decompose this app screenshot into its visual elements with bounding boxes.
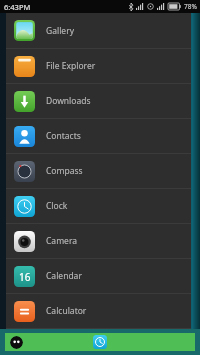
staticText: Camera xyxy=(46,235,77,247)
button[interactable]: File Explorer xyxy=(6,49,191,83)
staticText: Clock xyxy=(46,200,68,212)
button[interactable]: Calculator xyxy=(6,294,191,328)
staticText: 6:43PM xyxy=(4,2,31,12)
button[interactable]: Downloads xyxy=(6,84,191,118)
button[interactable]: Compass xyxy=(6,154,191,188)
staticText: Calendar xyxy=(46,270,82,282)
staticText: Compass xyxy=(46,165,83,177)
button[interactable]: Contacts xyxy=(6,119,191,153)
button[interactable]: Camera xyxy=(6,224,191,258)
staticText: 78% xyxy=(184,2,197,11)
button[interactable]: Gallery xyxy=(6,13,191,48)
staticText: Contacts xyxy=(46,130,81,142)
staticText: Downloads xyxy=(46,95,91,107)
button[interactable]: Menu xyxy=(10,336,23,349)
staticText: File Explorer xyxy=(46,60,96,72)
button[interactable]: Clock xyxy=(6,189,191,223)
button[interactable]: Clock xyxy=(93,335,107,349)
button[interactable]: 16 xyxy=(6,259,191,293)
staticText: Gallery xyxy=(46,25,74,37)
staticText: 16 xyxy=(19,270,31,284)
staticText: Calculator xyxy=(46,305,87,317)
